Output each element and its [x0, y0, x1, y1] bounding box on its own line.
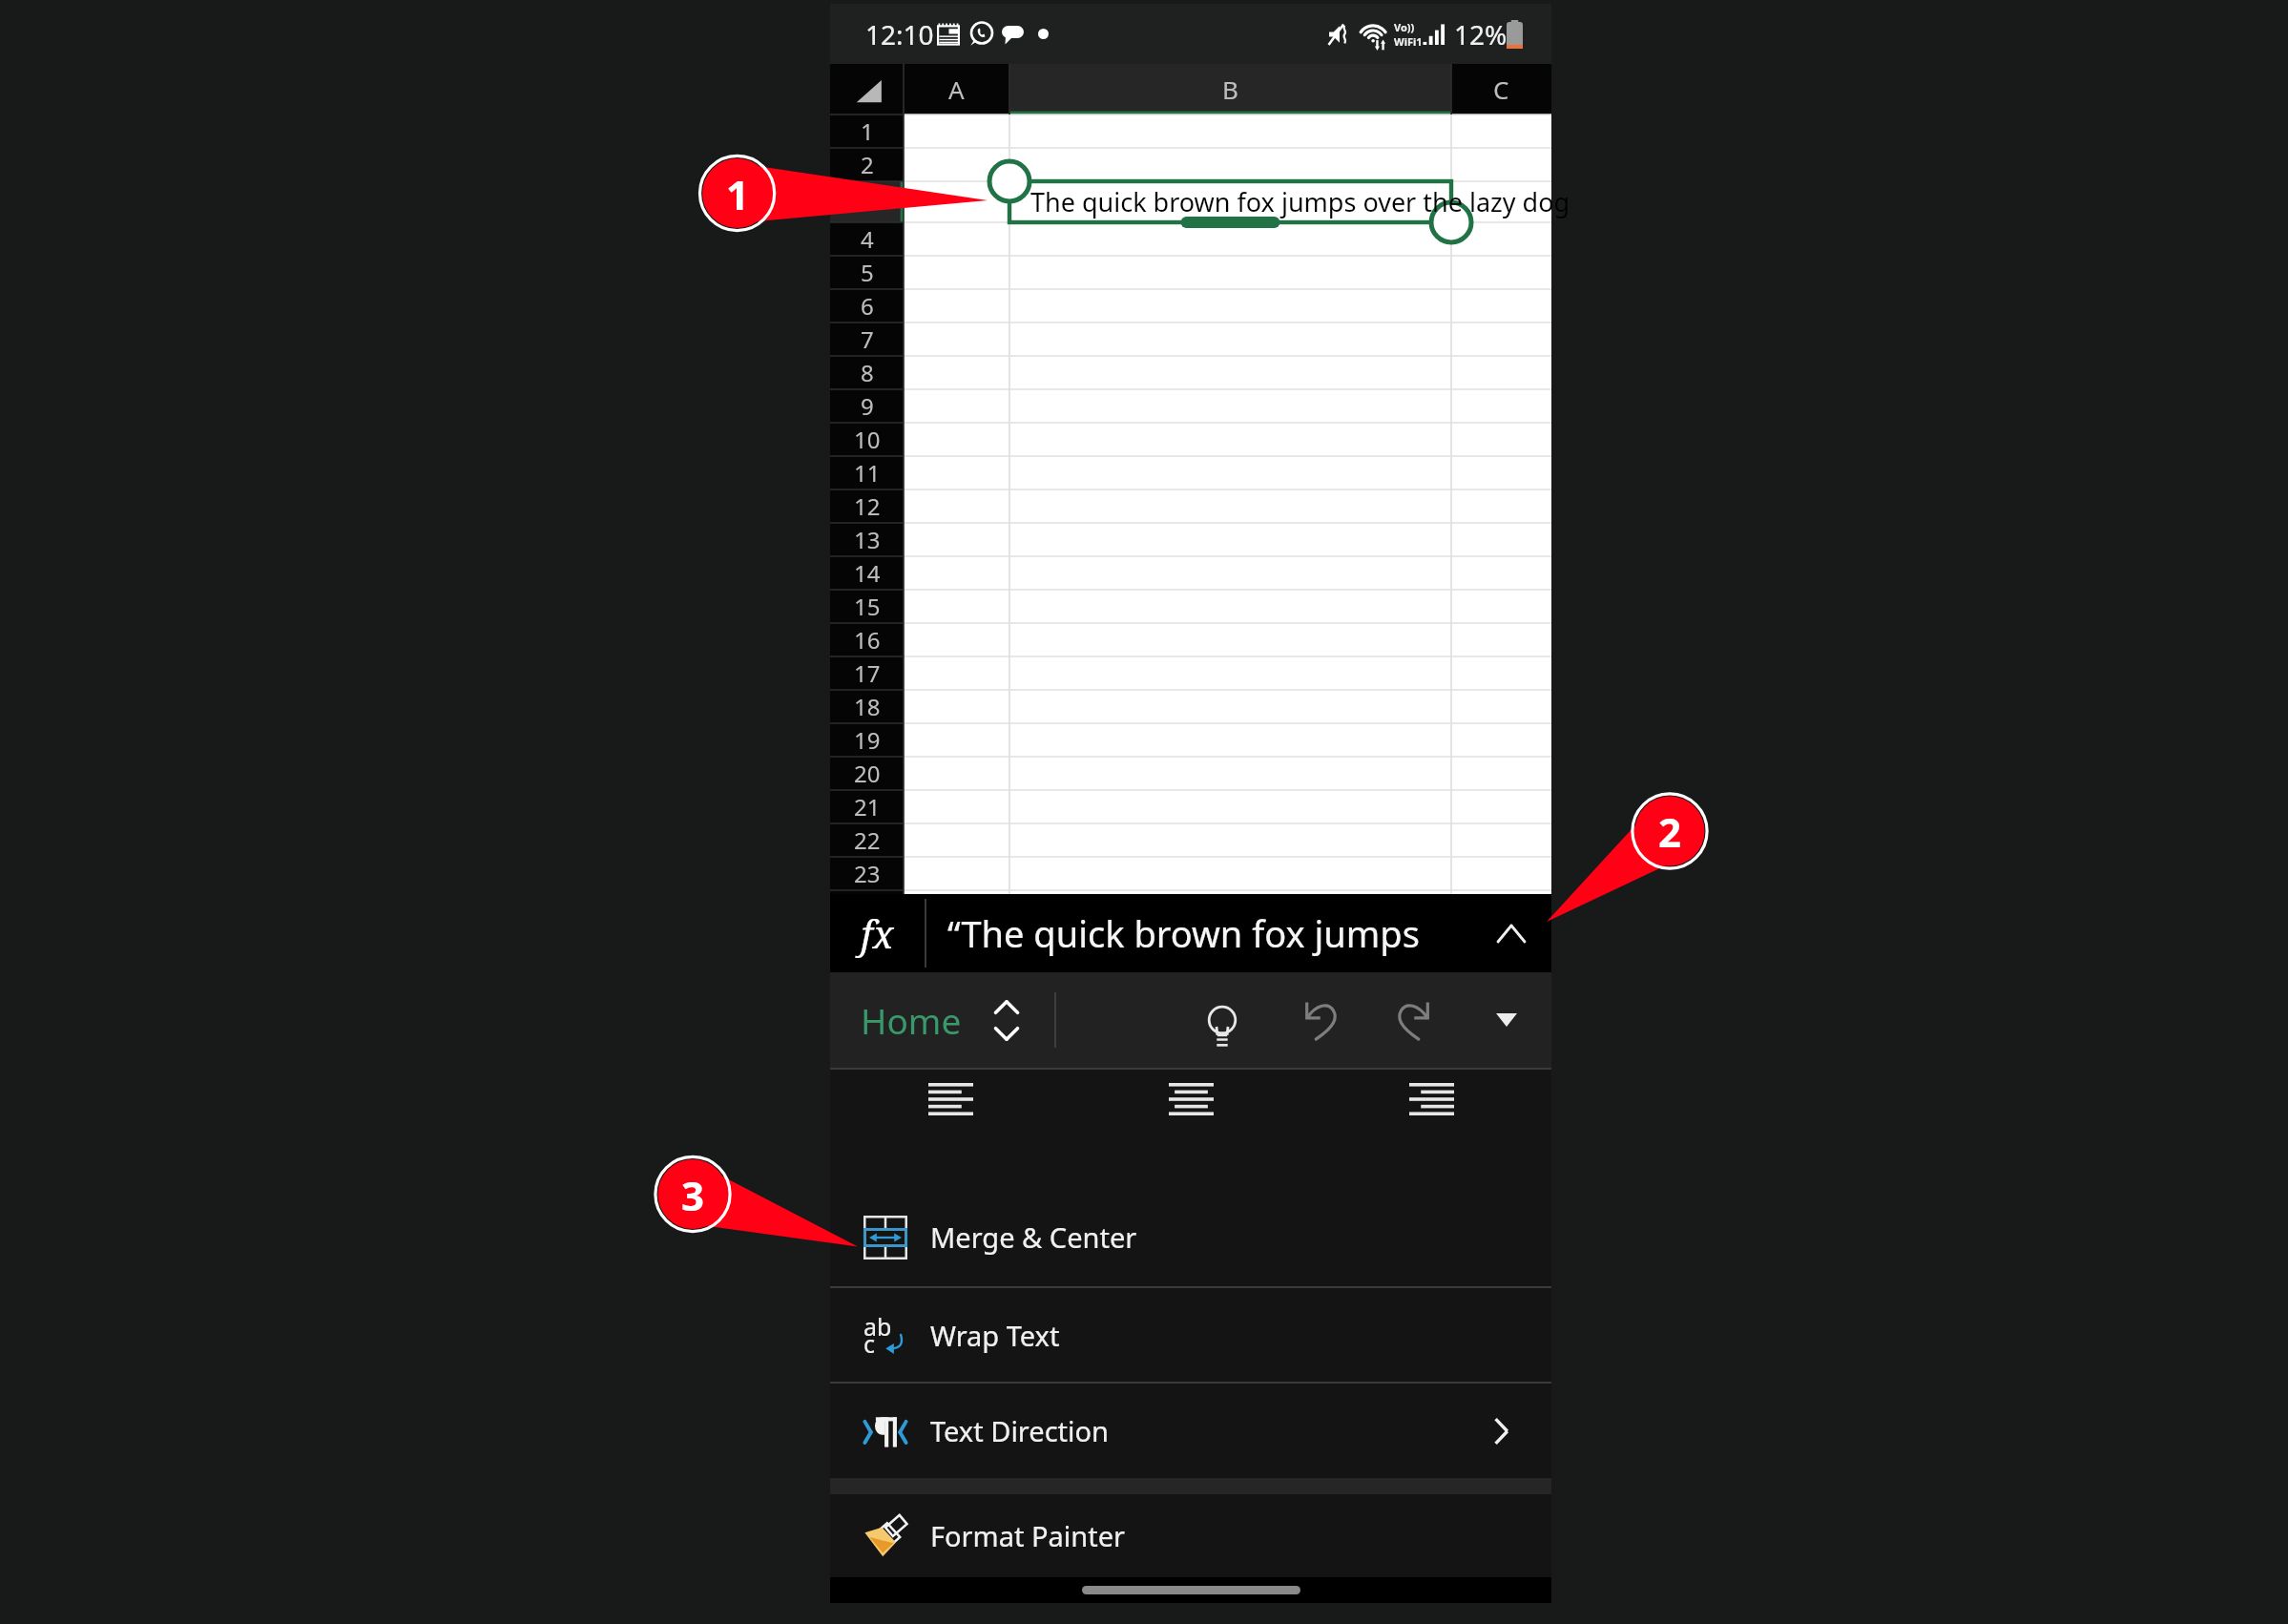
staticText: 16 — [854, 624, 881, 656]
staticText: WiFi1 — [1394, 34, 1423, 49]
staticText: 6 — [861, 290, 874, 322]
staticText: 19 — [854, 724, 881, 756]
button[interactable]: Align center — [1071, 1060, 1311, 1138]
staticText: 7 — [861, 323, 874, 355]
button[interactable]: Home — [846, 972, 1051, 1068]
staticText: 13 — [854, 524, 881, 555]
staticText: 2 — [861, 149, 874, 180]
staticText: 12% — [1454, 16, 1508, 52]
button[interactable]: Text Direction — [830, 1384, 1551, 1478]
button[interactable]: More options — [1478, 972, 1535, 1068]
staticText: 1 — [861, 115, 874, 147]
staticText: A — [948, 73, 965, 106]
staticText: 10 — [854, 424, 881, 455]
staticText: 12:10 — [865, 16, 934, 52]
staticText: 20 — [854, 758, 881, 789]
staticText: 21 — [854, 791, 881, 822]
staticText: 15 — [854, 591, 881, 622]
staticText: Merge & Center — [930, 1218, 1137, 1256]
button[interactable]: Undo — [1286, 972, 1353, 1068]
button[interactable]: ab — [830, 1288, 1551, 1382]
staticText: Home — [861, 996, 962, 1044]
staticText: fx — [861, 907, 894, 959]
staticText: 3 — [861, 186, 874, 218]
staticText: “The quick brown fox jumps — [947, 908, 1420, 958]
staticText: Text Direction — [930, 1412, 1109, 1449]
staticText: 11 — [854, 457, 881, 489]
staticText: Vo)) — [1394, 20, 1415, 34]
staticText: Format Painter — [930, 1517, 1125, 1554]
button[interactable]: Align right — [1311, 1060, 1551, 1138]
button[interactable]: Expand formula bar — [1471, 894, 1551, 972]
staticText: 18 — [854, 691, 881, 722]
button[interactable]: Format Painter — [830, 1494, 1551, 1577]
staticText: 22 — [854, 824, 881, 856]
staticText: 3 — [681, 1168, 705, 1222]
button[interactable]: Align left — [830, 1060, 1071, 1138]
staticText: 23 — [854, 858, 881, 889]
staticText: 1 — [726, 167, 750, 221]
staticText: C — [1493, 73, 1509, 106]
staticText: c — [863, 1327, 876, 1360]
staticText: ab — [863, 1310, 892, 1343]
button[interactable]: Redo — [1382, 972, 1448, 1068]
staticText: 2 — [1658, 804, 1682, 859]
staticText: B — [1222, 73, 1238, 106]
staticText: 9 — [861, 390, 874, 422]
staticText: 8 — [861, 357, 874, 388]
staticText: 14 — [854, 557, 881, 589]
button[interactable]: Merge & Center — [830, 1188, 1551, 1286]
staticText: 17 — [854, 657, 881, 689]
staticText: 4 — [861, 223, 874, 255]
button[interactable]: Formula — [830, 894, 925, 972]
staticText: 5 — [861, 257, 874, 288]
staticText: Wrap Text — [930, 1317, 1060, 1354]
staticText: 12 — [854, 490, 881, 522]
button[interactable]: Tell me what you want to do — [1189, 972, 1256, 1068]
staticText: The quick brown fox jumps over the lazy … — [1030, 184, 1570, 219]
